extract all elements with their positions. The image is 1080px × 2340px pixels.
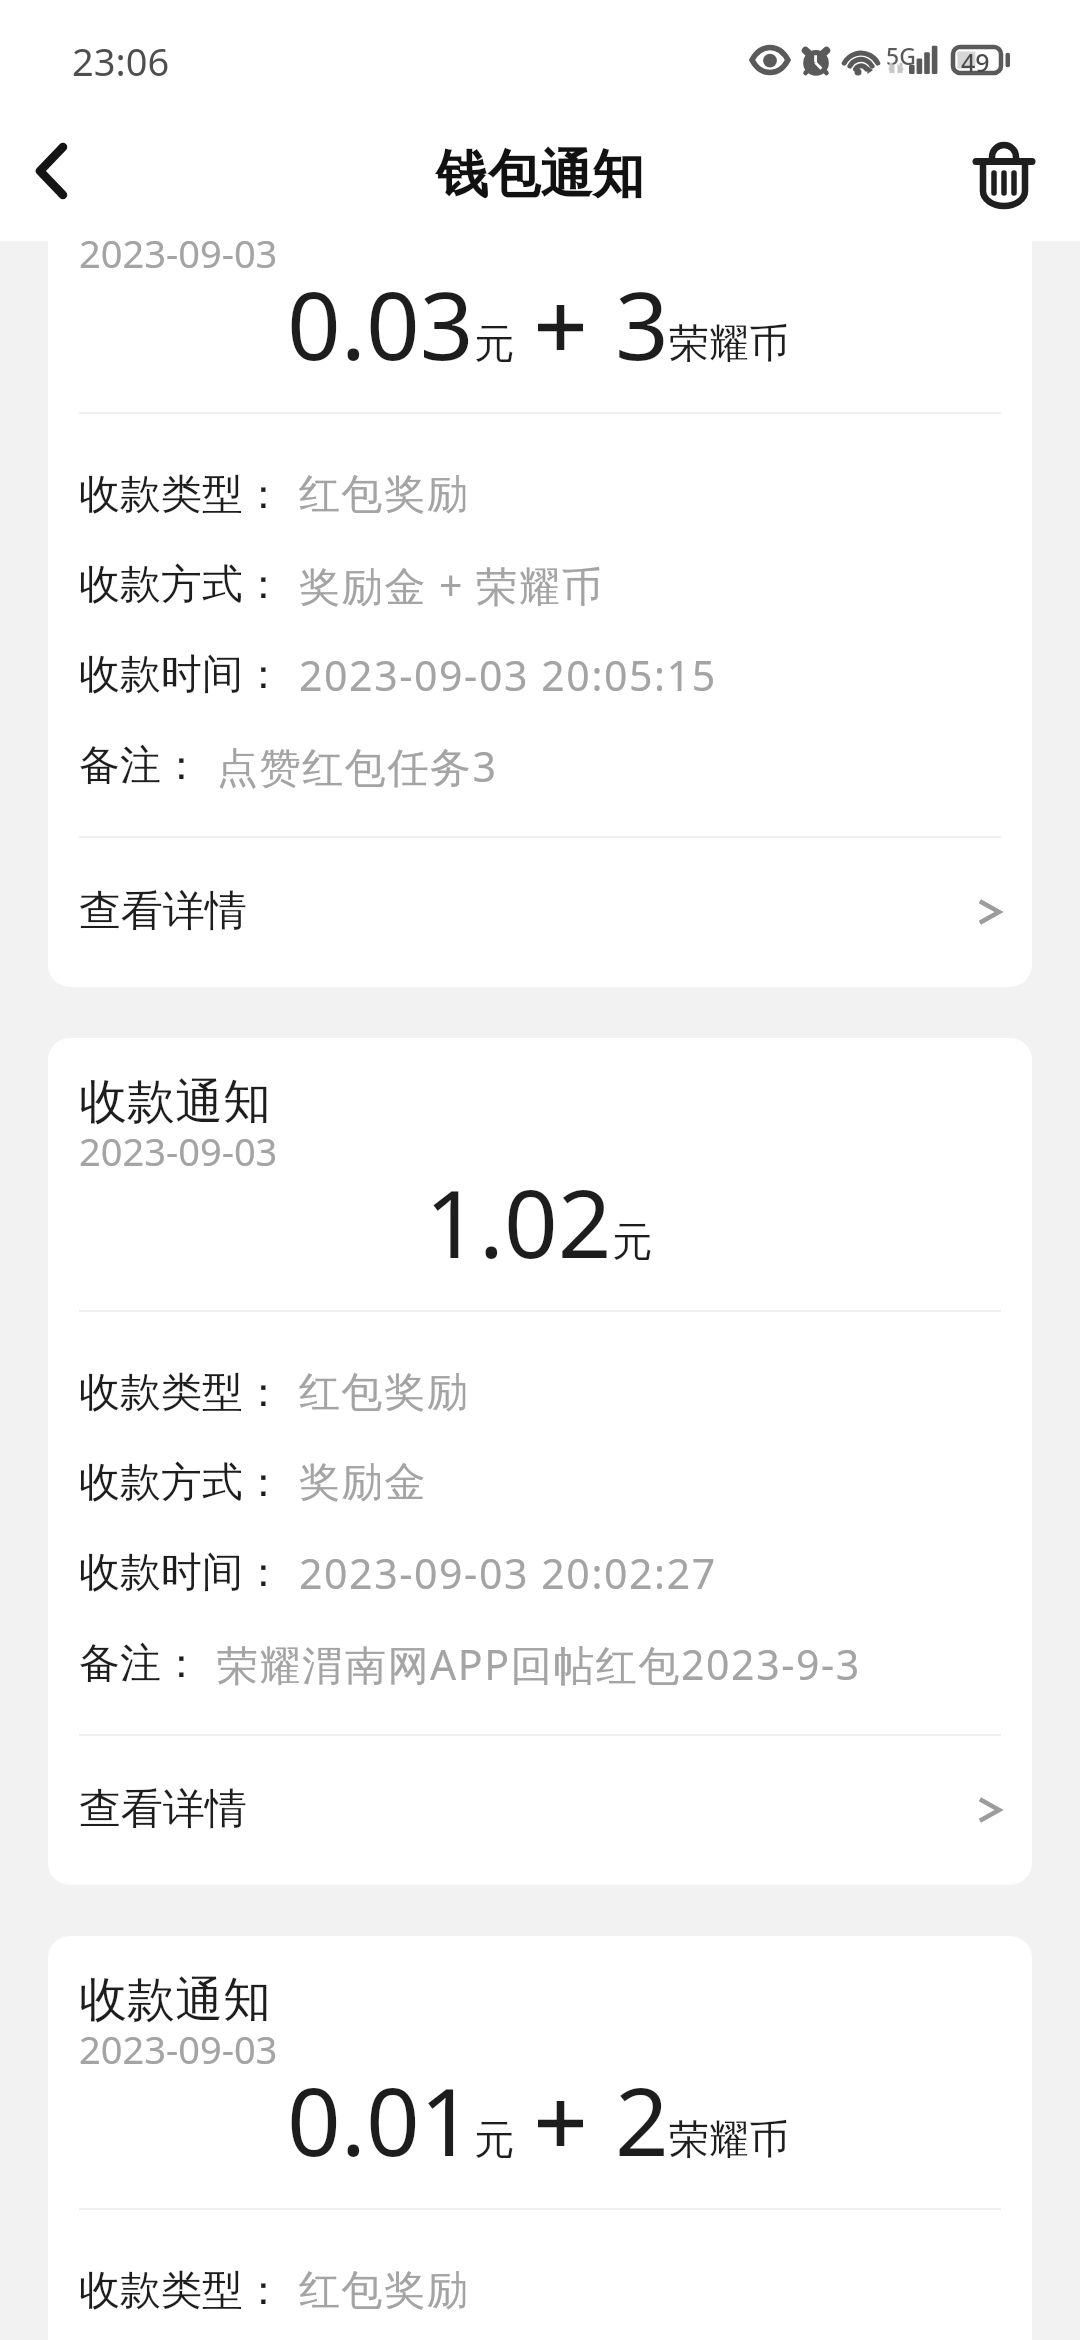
button[interactable]: Back <box>0 111 106 231</box>
staticText: 查看详情 <box>79 1783 247 1836</box>
staticText: 2 <box>615 2056 669 2184</box>
staticText: 元 <box>474 318 514 368</box>
staticText: 元 <box>612 1216 652 1266</box>
staticText: 3 <box>615 260 669 388</box>
button[interactable]: Delete <box>946 116 1056 226</box>
staticText: 收款时间： <box>79 1547 284 1599</box>
staticText: 收款类型： <box>79 1367 284 1419</box>
button[interactable]: 收款通知 <box>48 1936 1032 2340</box>
staticText: 收款类型： <box>79 469 284 521</box>
staticText: 2023-09-03 <box>79 1125 278 1177</box>
staticText: 收款时间： <box>79 649 284 701</box>
staticText: 荣耀币 <box>669 318 789 368</box>
staticText: 2023-09-03 20:02:27 <box>299 1545 717 1601</box>
staticText: 0.03 <box>287 260 474 388</box>
staticText: 点赞红包任务3 <box>217 738 498 794</box>
staticText: 元 <box>474 2114 514 2164</box>
staticText: 2023-09-03 <box>79 2023 278 2075</box>
staticText: 奖励金 <box>299 1457 427 1509</box>
staticText: 23:06 <box>72 35 170 85</box>
button[interactable]: 收款通知 <box>48 140 1032 987</box>
staticText: 0.01 <box>287 2056 474 2184</box>
staticText: 收款通知 <box>79 1072 271 1132</box>
staticText: 1.02 <box>425 1158 612 1286</box>
staticText: 荣耀币 <box>669 2114 789 2164</box>
staticText: 红包奖励 <box>299 1367 470 1419</box>
staticText: 2023-09-03 <box>79 227 278 279</box>
staticText: 收款方式： <box>79 1457 284 1509</box>
staticText: 2023-09-03 20:05:15 <box>299 647 717 703</box>
staticText: 红包奖励 <box>299 469 470 521</box>
button[interactable]: 查看详情 <box>48 1734 1032 1885</box>
staticText: 荣耀渭南网APP回帖红包2023-9-3 <box>217 1636 861 1692</box>
staticText: 奖励金 + 荣耀币 <box>299 557 605 613</box>
button[interactable]: 收款通知 <box>48 1038 1032 1885</box>
staticText: 49 <box>961 45 990 75</box>
staticText: 5G <box>886 40 916 71</box>
staticText: 红包奖励 <box>299 2265 470 2317</box>
staticText: 钱包通知 <box>436 142 644 208</box>
staticText: 备注： <box>79 1638 202 1690</box>
button[interactable]: 查看详情 <box>48 836 1032 987</box>
staticText: 收款通知 <box>79 1970 271 2030</box>
staticText: 收款方式： <box>79 559 284 611</box>
staticText: 查看详情 <box>79 885 247 938</box>
staticText: 收款类型： <box>79 2265 284 2317</box>
staticText: 备注： <box>79 740 202 792</box>
